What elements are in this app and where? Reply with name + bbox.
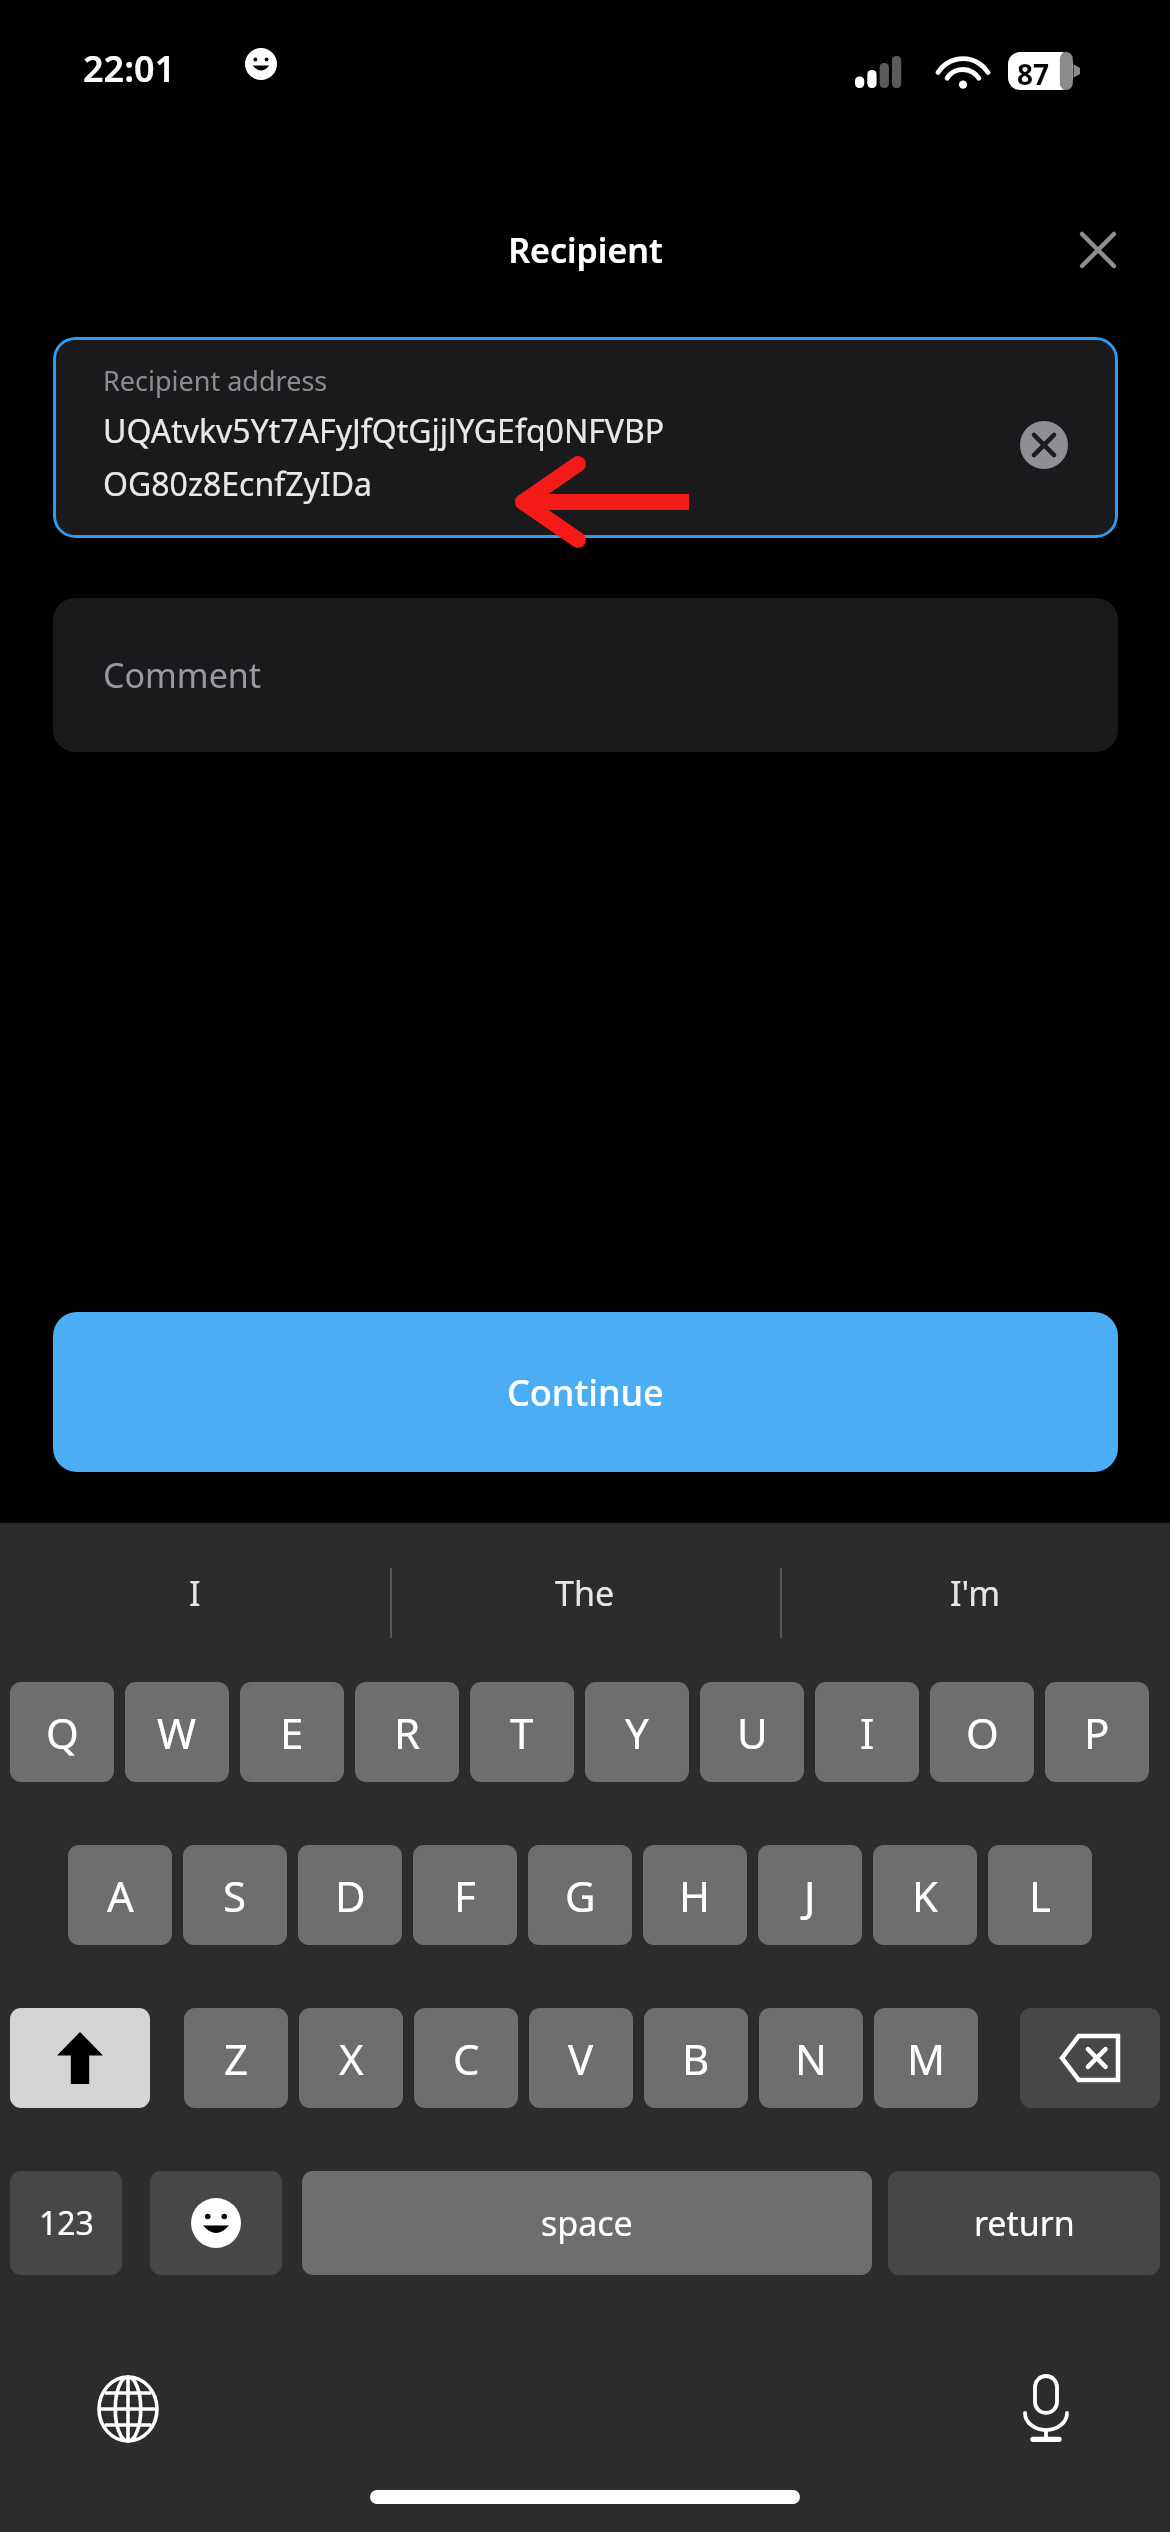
button[interactable]: K	[873, 1845, 977, 1945]
button[interactable]: The	[390, 1523, 780, 1663]
staticText: Continue	[507, 1368, 664, 1417]
button[interactable]: M	[874, 2008, 978, 2108]
staticText: Q	[46, 1704, 79, 1761]
staticText: space	[541, 2200, 633, 2246]
staticText: V	[568, 2030, 594, 2087]
staticText: L	[1029, 1867, 1052, 1924]
button[interactable]: Emoji	[150, 2171, 282, 2275]
staticText: T	[510, 1704, 534, 1761]
staticText: return	[974, 2200, 1075, 2246]
staticText: X	[339, 2030, 364, 2087]
button[interactable]: T	[470, 1682, 574, 1782]
staticText: O	[966, 1704, 999, 1761]
button[interactable]: N	[759, 2008, 863, 2108]
button[interactable]: A	[68, 1845, 172, 1945]
button[interactable]: I'm	[780, 1523, 1170, 1663]
staticText: N	[795, 2030, 827, 2087]
staticText: K	[912, 1867, 938, 1924]
staticText: Recipient address	[103, 362, 328, 399]
button[interactable]: D	[298, 1845, 402, 1945]
button[interactable]: return	[888, 2171, 1160, 2275]
staticText: Y	[625, 1704, 649, 1761]
button[interactable]: X	[299, 2008, 403, 2108]
button[interactable]: O	[930, 1682, 1034, 1782]
staticText: S	[223, 1867, 247, 1924]
button[interactable]: R	[355, 1682, 459, 1782]
button[interactable]: V	[529, 2008, 633, 2108]
staticText: 87	[1017, 55, 1050, 93]
button[interactable]: 123	[10, 2171, 122, 2275]
staticText: Comment	[103, 652, 262, 698]
button[interactable]: U	[700, 1682, 804, 1782]
staticText: R	[394, 1704, 421, 1761]
button[interactable]: Comment	[53, 598, 1118, 752]
staticText: A	[107, 1867, 134, 1924]
button[interactable]: space	[302, 2171, 872, 2275]
button[interactable]: Y	[585, 1682, 689, 1782]
staticText: I'm	[950, 1570, 1000, 1616]
staticText: C	[453, 2030, 480, 2087]
staticText: I	[189, 1570, 201, 1616]
staticText: P	[1084, 1704, 1110, 1761]
staticText: Z	[224, 2030, 249, 2087]
button[interactable]: I	[815, 1682, 919, 1782]
button[interactable]: W	[125, 1682, 229, 1782]
button[interactable]: Voice input	[1000, 2363, 1092, 2455]
staticText: D	[335, 1867, 366, 1924]
staticText: Recipient	[508, 227, 663, 273]
staticText: OG80z8EcnfZyIDa	[103, 462, 372, 506]
staticText: E	[280, 1704, 304, 1761]
staticText: 22:01	[83, 44, 176, 93]
staticText: J	[804, 1867, 816, 1924]
button[interactable]: Shift	[10, 2008, 150, 2108]
button[interactable]: Z	[184, 2008, 288, 2108]
staticText: The	[555, 1570, 615, 1616]
staticText: I	[860, 1704, 875, 1761]
staticText: W	[157, 1704, 197, 1761]
staticText: M	[907, 2030, 946, 2087]
button[interactable]: I	[0, 1523, 390, 1663]
button[interactable]: Close	[1066, 218, 1130, 282]
button[interactable]: Q	[10, 1682, 114, 1782]
button[interactable]: G	[528, 1845, 632, 1945]
staticText: U	[737, 1704, 768, 1761]
button[interactable]: Switch keyboard language	[82, 2363, 174, 2455]
button[interactable]: Recipient address	[53, 337, 1118, 538]
button[interactable]: Clear address	[1016, 417, 1072, 473]
staticText: F	[454, 1867, 476, 1924]
button[interactable]: Backspace	[1020, 2008, 1160, 2108]
button[interactable]: F	[413, 1845, 517, 1945]
button[interactable]: P	[1045, 1682, 1149, 1782]
button[interactable]: E	[240, 1682, 344, 1782]
button[interactable]: B	[644, 2008, 748, 2108]
staticText: G	[565, 1867, 596, 1924]
button[interactable]: Continue	[53, 1312, 1118, 1472]
button[interactable]: S	[183, 1845, 287, 1945]
staticText: 123	[39, 2201, 94, 2245]
staticText: UQAtvkv5Yt7AFyJfQtGjjlYGEfq0NFVBP	[103, 409, 665, 453]
button[interactable]: J	[758, 1845, 862, 1945]
button[interactable]: H	[643, 1845, 747, 1945]
staticText: H	[679, 1867, 711, 1924]
staticText: B	[682, 2030, 710, 2087]
button[interactable]: C	[414, 2008, 518, 2108]
button[interactable]: L	[988, 1845, 1092, 1945]
